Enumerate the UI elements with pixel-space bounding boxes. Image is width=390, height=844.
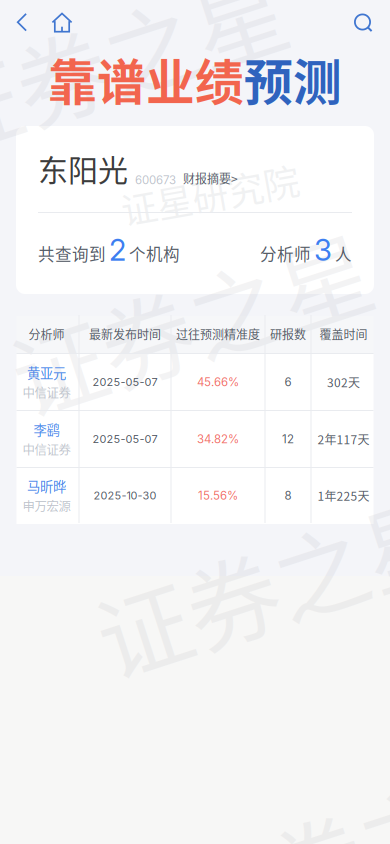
staticText: 1年225天 <box>317 487 369 504</box>
staticText: 3 <box>314 232 332 268</box>
staticText: 过往预测精准度 <box>176 325 260 343</box>
staticText: 东阳光 <box>38 147 128 190</box>
staticText: 证星研究院 <box>120 168 300 220</box>
button[interactable]: Home <box>41 0 83 45</box>
staticText: 2025-10-30 <box>93 489 156 502</box>
staticText: 2年117天 <box>317 430 369 448</box>
staticText: 12 <box>282 432 294 446</box>
staticText: 覆盖时间 <box>319 325 367 343</box>
staticText: 6 <box>284 375 291 389</box>
staticText: 靠谱业绩 <box>48 44 244 114</box>
staticText: 15.56% <box>198 489 238 502</box>
staticText: 302天 <box>327 373 360 391</box>
staticText: 34.82% <box>197 432 239 446</box>
staticText: 预测 <box>244 44 342 114</box>
button[interactable]: Search <box>342 0 384 45</box>
staticText: 证券之星 <box>47 522 390 657</box>
button[interactable]: 黄亚元 <box>14 354 78 410</box>
staticText: 财报摘要> <box>183 170 238 187</box>
button[interactable]: Back <box>3 0 41 45</box>
button[interactable]: 李鹞 <box>14 411 78 467</box>
staticText: 600673 <box>135 173 176 187</box>
staticText: 研报数 <box>270 325 306 343</box>
staticText: 证券之星 <box>47 247 390 382</box>
staticText: 2 <box>109 232 126 268</box>
staticText: 黄亚元 <box>27 363 66 382</box>
staticText: 分析师 <box>28 325 64 343</box>
staticText: 45.66% <box>197 375 239 389</box>
staticText: 分析师 <box>260 241 311 265</box>
button[interactable]: 马昕晔 <box>14 468 78 523</box>
staticText: 证券之星 <box>47 0 390 107</box>
staticText: 2025-05-07 <box>92 432 157 446</box>
staticText: 中信证券 <box>22 383 70 401</box>
button[interactable]: 财报摘要> <box>183 170 238 190</box>
staticText: 人 <box>335 241 352 265</box>
staticText: 共查询到 <box>38 241 106 265</box>
staticText: 8 <box>284 489 291 502</box>
staticText: 个机构 <box>129 241 180 265</box>
staticText: 2025-05-07 <box>92 375 157 389</box>
staticText: 马昕晔 <box>27 476 66 496</box>
staticText: 李鹞 <box>33 420 59 439</box>
staticText: 最新发布时间 <box>89 325 161 343</box>
staticText: 中信证券 <box>22 440 70 458</box>
staticText: 申万宏源 <box>22 497 70 515</box>
